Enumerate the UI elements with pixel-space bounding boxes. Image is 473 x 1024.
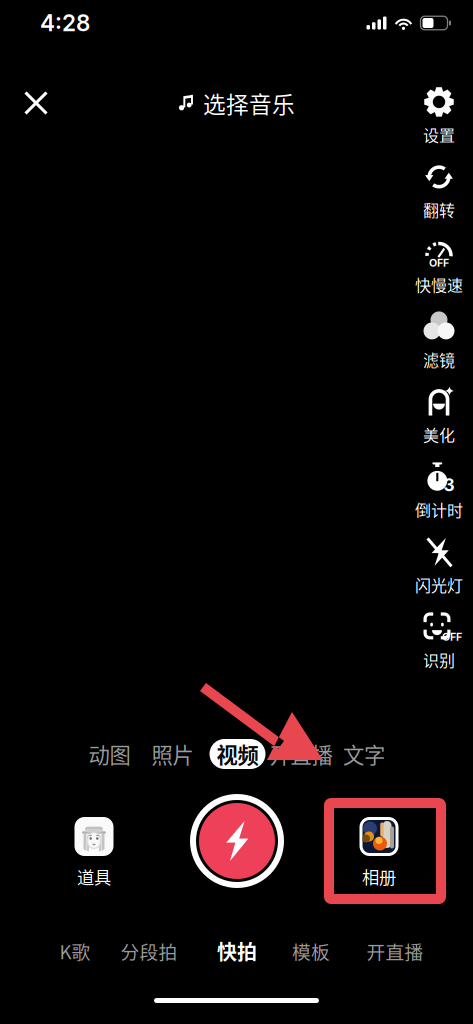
staticText: 快慢速 [415,273,463,296]
button[interactable]: 道具 [55,817,133,889]
staticText: OFF [429,256,449,269]
staticText: 快拍 [217,936,257,965]
staticText: 翻转 [423,198,455,221]
staticText: 识别 [423,648,455,671]
staticText: 分段拍 [120,937,177,964]
button[interactable]: 文字 [317,738,411,770]
button[interactable]: 开直播 [254,738,348,770]
staticText: 设置 [423,123,455,146]
staticText: 动图 [88,739,130,769]
staticText: 视频 [216,739,258,769]
staticText: OFF [442,630,462,643]
staticText: 滤镜 [423,348,455,371]
staticText: 开直播 [269,739,332,769]
button[interactable]: OFF [408,612,470,670]
staticText: 倒计时 [415,498,463,521]
staticText: 道具 [77,864,111,889]
button[interactable]: 快拍 [197,936,277,966]
button[interactable]: 开直播 [355,936,435,966]
button[interactable]: 3 [408,462,470,520]
button[interactable]: 动图 [62,738,156,770]
button[interactable]: 设置 [408,87,470,145]
button[interactable]: 选择音乐 [172,81,302,125]
staticText: K歌 [59,937,90,964]
button[interactable]: 照片 [125,738,219,770]
staticText: 3 [443,474,454,495]
staticText: 相册 [362,864,396,889]
button[interactable]: 模板 [271,936,351,966]
staticText: 4:28 [40,9,90,37]
button[interactable]: 视频 [190,738,284,770]
button[interactable]: 美化 [408,387,470,445]
staticText: 模板 [292,937,330,964]
button[interactable]: Close [12,79,60,127]
staticText: 照片 [151,739,193,769]
staticText: 美化 [423,423,455,446]
button[interactable]: 滤镜 [408,312,470,370]
button[interactable]: 分段拍 [109,936,189,966]
button[interactable]: 闪光灯 [408,537,470,595]
staticText: 选择音乐 [203,87,295,119]
button[interactable]: Record [189,793,285,889]
button[interactable]: K歌 [35,936,115,966]
staticText: 开直播 [366,937,423,964]
staticText: 文字 [343,739,385,769]
button[interactable]: OFF [408,237,470,295]
button[interactable]: 相册 [340,817,418,889]
staticText: 闪光灯 [415,573,463,596]
button[interactable]: 翻转 [408,162,470,220]
